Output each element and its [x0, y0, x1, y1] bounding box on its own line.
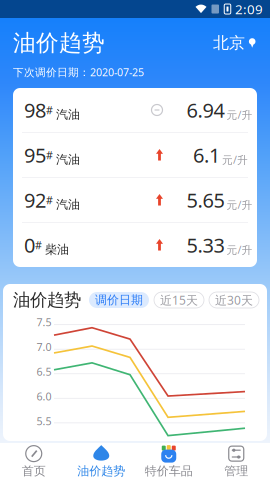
staticText: 元/升 — [222, 153, 248, 167]
staticText: 北京 — [213, 33, 245, 53]
staticText: 近30天 — [215, 292, 253, 308]
staticText: 首页 — [22, 464, 46, 478]
staticText: # — [46, 193, 53, 207]
button[interactable]: 管理 — [202, 443, 270, 480]
staticText: 下次调价日期：2020-07-25 — [13, 65, 144, 79]
staticText: 98 — [24, 97, 46, 123]
staticText: 元/升 — [226, 198, 252, 212]
staticText: # — [35, 238, 42, 252]
staticText: 7.5 — [36, 315, 51, 329]
button[interactable]: 北京 — [207, 29, 257, 57]
button[interactable]: 98 — [13, 88, 257, 132]
button[interactable]: 95 — [13, 133, 257, 177]
staticText: 6.5 — [36, 364, 51, 379]
button[interactable]: 近30天 — [209, 292, 259, 308]
staticText: 6.94 — [186, 97, 224, 123]
staticText: 汽油 — [56, 197, 80, 212]
staticText: 5.5 — [36, 414, 51, 428]
button[interactable]: 首页 — [0, 443, 67, 480]
staticText: 汽油 — [56, 152, 80, 167]
staticText: # — [46, 148, 53, 162]
staticText: 油价趋势 — [77, 464, 125, 478]
staticText: 5.65 — [186, 187, 224, 213]
staticText: 95 — [24, 142, 46, 168]
staticText: 92 — [24, 187, 46, 213]
staticText: 2:09 — [235, 0, 263, 18]
button[interactable]: 近15天 — [154, 292, 204, 308]
staticText: 调价日期 — [95, 293, 143, 307]
button[interactable]: 92 — [13, 178, 257, 222]
staticText: 油价趋势 — [13, 29, 105, 57]
staticText: 7.0 — [36, 340, 51, 354]
staticText: 0 — [24, 232, 35, 258]
button[interactable]: 调价日期 — [89, 292, 149, 308]
staticText: 6.0 — [36, 389, 51, 403]
button[interactable]: 特价车品 — [135, 443, 202, 480]
button[interactable]: 油价趋势 — [67, 443, 135, 480]
staticText: 管理 — [224, 464, 248, 478]
staticText: # — [46, 103, 53, 117]
staticText: 元/升 — [226, 243, 252, 257]
staticText: 汽油 — [56, 107, 80, 122]
staticText: 柴油 — [45, 242, 69, 257]
staticText: 5.33 — [186, 232, 224, 258]
staticText: 特价车品 — [145, 464, 193, 478]
staticText: 油价趋势 — [13, 289, 81, 311]
staticText: 6.1 — [193, 142, 220, 168]
button[interactable]: 0 — [13, 223, 257, 267]
staticText: 元/升 — [226, 108, 252, 122]
staticText: 近15天 — [160, 292, 198, 308]
